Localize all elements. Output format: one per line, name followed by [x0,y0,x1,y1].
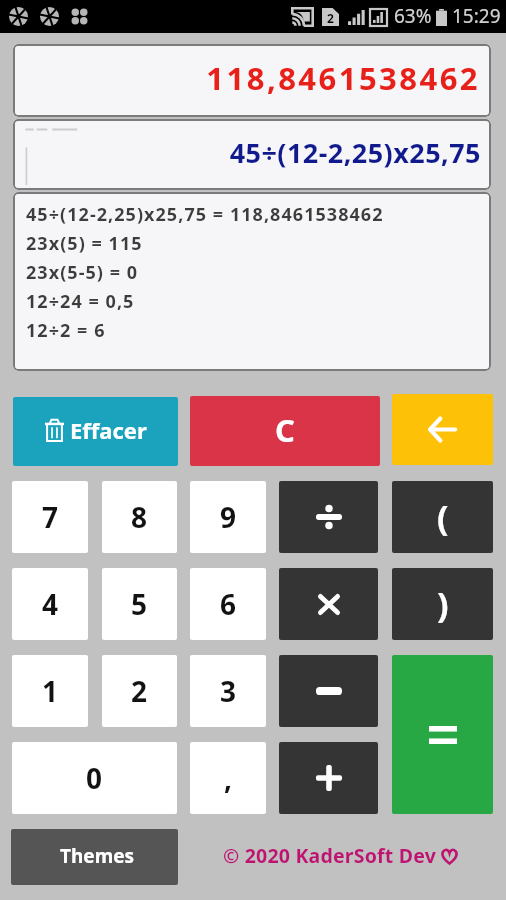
staticText: 45÷(12-2,25)x25,75 [229,134,481,171]
button[interactable]: C [190,396,380,466]
button[interactable]: 1 [12,655,88,727]
button[interactable]: Multiply [279,568,378,640]
staticText: 4 [42,585,59,623]
staticText: 15:29 [452,3,501,29]
button[interactable]: ( [392,481,493,553]
button[interactable]: Divide [279,481,378,553]
staticText: 12÷2 = 6 [26,318,106,343]
staticText: 7 [42,498,59,536]
button[interactable]: Themes [11,829,178,885]
button[interactable]: 3 [190,655,266,727]
staticText: 45÷(12-2,25)x25,75 = 118,8461538462 [26,202,384,227]
staticText: 118,8461538462 [206,57,480,99]
staticText: 8 [131,498,148,536]
button[interactable]: 7 [12,481,88,553]
staticText: Themes [60,843,135,869]
staticText: © 2020 KaderSoft Dev [223,842,436,869]
staticText: 3 [220,672,237,710]
staticText: , [224,759,232,797]
staticText: Effacer [70,415,147,445]
staticText: 0 [86,759,103,797]
button[interactable]: 0 [12,742,177,814]
button[interactable]: , [190,742,266,814]
button[interactable]: Backspace [392,394,493,465]
staticText: C [275,409,295,451]
staticText: 12÷24 = 0,5 [26,289,135,314]
staticText: 23x(5-5) = 0 [26,260,139,285]
button[interactable]: 4 [12,568,88,640]
staticText: 1 [42,672,59,710]
button[interactable]: 6 [190,568,266,640]
button[interactable]: Equals [392,655,493,814]
button[interactable]: 2 [102,655,177,727]
button[interactable]: 9 [190,481,266,553]
staticText: 23x(5) = 115 [26,231,143,256]
button[interactable]: ) [392,568,493,640]
staticText: 5 [131,585,148,623]
staticText: 2 [327,10,334,26]
staticText: ( [437,494,449,540]
button[interactable]: Effacer [13,397,178,466]
button[interactable]: Minus [279,655,378,727]
button[interactable]: 5 [102,568,177,640]
staticText: 9 [220,498,237,536]
staticText: ) [437,581,449,627]
staticText: 2 [131,672,148,710]
button[interactable]: Plus [279,742,378,814]
button[interactable]: 8 [102,481,177,553]
staticText: 63% [394,3,432,29]
staticText: 6 [220,585,237,623]
